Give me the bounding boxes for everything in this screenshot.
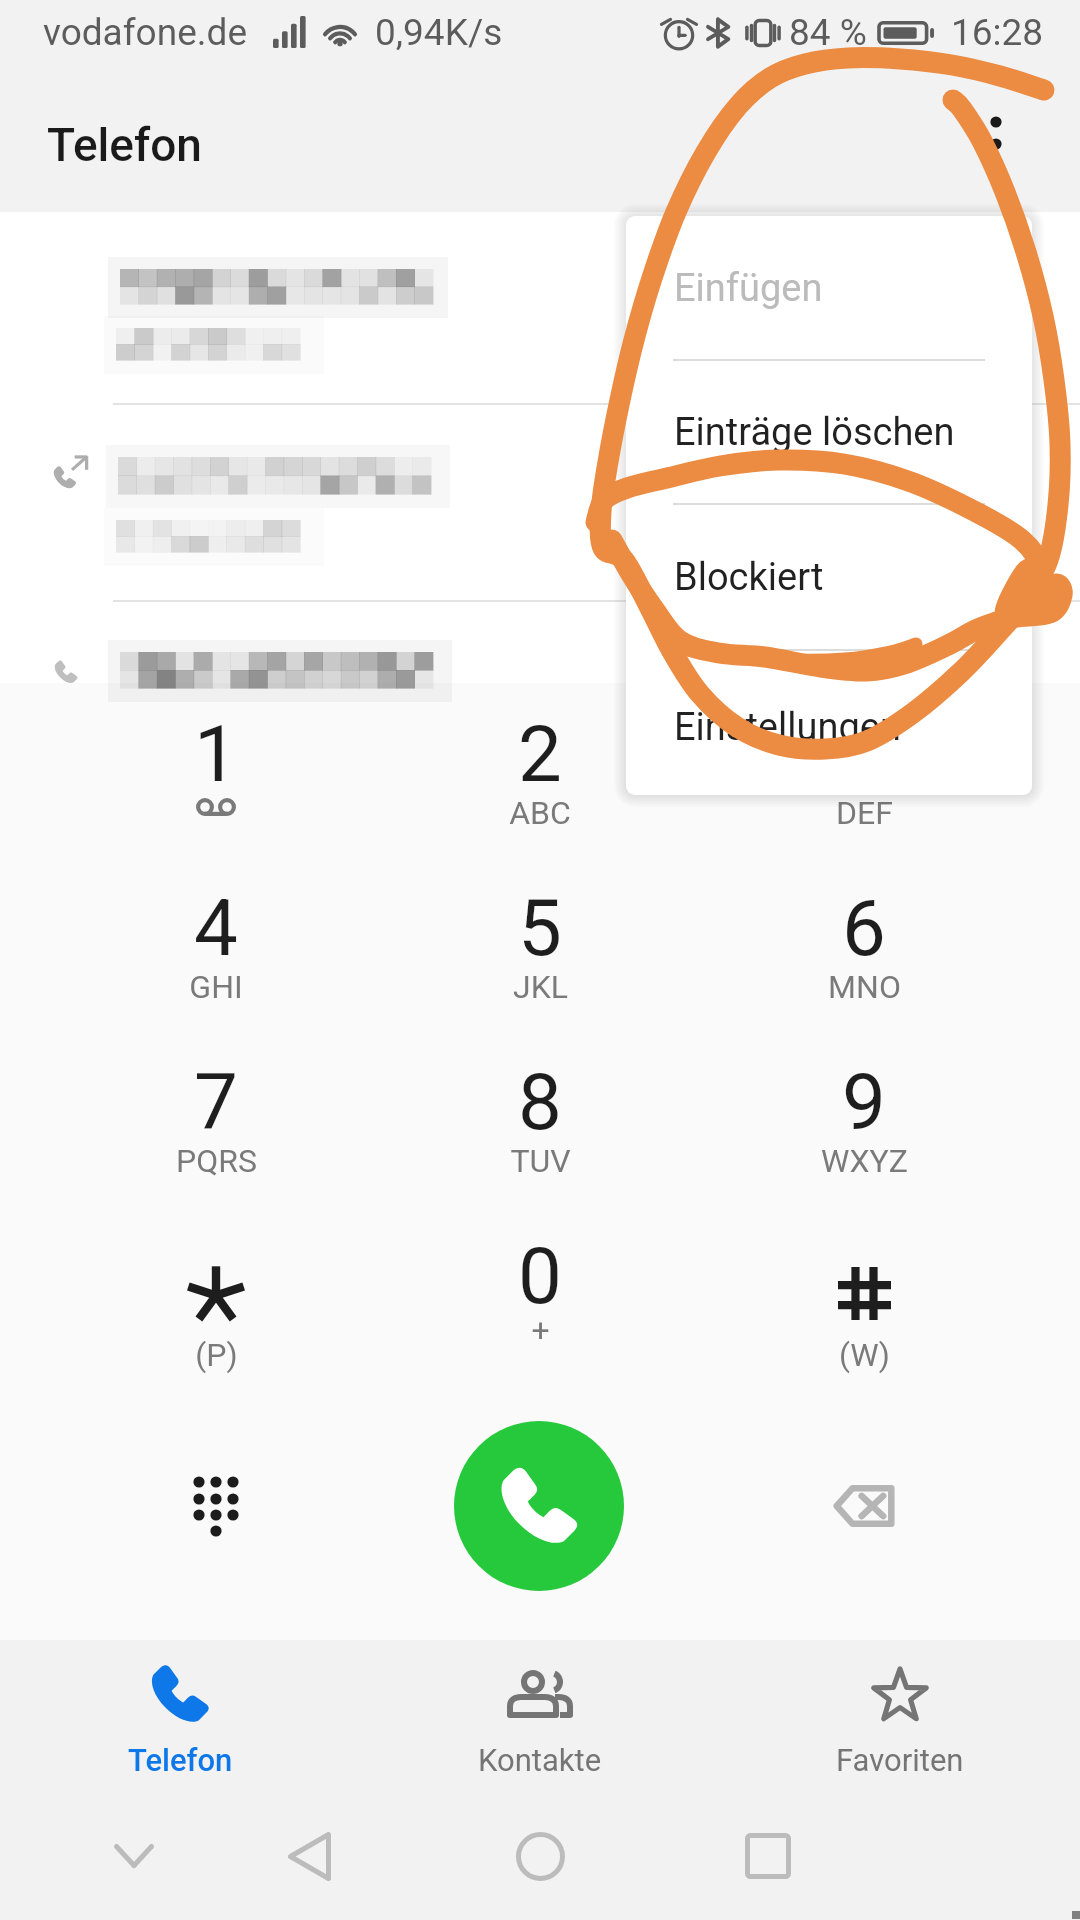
button[interactable]: 2 [378, 709, 702, 883]
button[interactable]: Home [480, 1796, 600, 1916]
staticText: 4 [194, 883, 238, 967]
staticText: (P) [195, 1336, 238, 1374]
staticText: 7 [194, 1057, 238, 1141]
staticText: 84 % [789, 11, 867, 54]
button[interactable]: Backspace [789, 1431, 939, 1581]
staticText: 9 [842, 1057, 886, 1141]
staticText: Favoriten [836, 1742, 964, 1778]
staticText: 8 [518, 1057, 562, 1141]
staticText: 1 [194, 709, 238, 793]
staticText: GHI [189, 968, 243, 1006]
staticText: Telefon [128, 1742, 233, 1778]
button[interactable]: Show keypad [140, 1431, 290, 1581]
staticText: 3 [842, 709, 886, 793]
staticText: Einträge löschen [674, 410, 955, 455]
button[interactable]: 7 [54, 1057, 378, 1231]
button[interactable]: 8 [378, 1057, 702, 1231]
staticText: PQRS [176, 1142, 257, 1180]
button[interactable]: Blockiert [626, 504, 1032, 650]
button[interactable]: Recents [708, 1796, 828, 1916]
staticText: WXYZ [821, 1142, 908, 1180]
staticText: Einfügen [674, 266, 823, 311]
staticText: Blockiert [674, 555, 824, 600]
button[interactable]: 4 [54, 883, 378, 1057]
button[interactable]: Hide keyboard [74, 1796, 194, 1916]
button[interactable]: 0 [378, 1231, 702, 1405]
button[interactable]: More options [948, 74, 1044, 170]
button[interactable]: Favoriten [720, 1640, 1080, 1800]
staticText: 0 [518, 1231, 562, 1315]
staticText: 6 [842, 883, 886, 967]
staticText: Einstellungen [674, 705, 901, 750]
staticText: Telefon [47, 118, 202, 172]
button[interactable]: 6 [702, 883, 1026, 1057]
button[interactable]: 9 [702, 1057, 1026, 1231]
staticText: JKL [513, 968, 568, 1006]
button[interactable]: 1 [54, 709, 378, 883]
button[interactable]: Einstellungen [626, 655, 1032, 795]
staticText: 2 [518, 709, 562, 793]
button[interactable]: Telefon [0, 1640, 360, 1800]
button[interactable]: Einträge löschen [626, 360, 1032, 504]
button[interactable]: Kontakte [360, 1640, 720, 1800]
staticText: MNO [828, 968, 901, 1006]
button[interactable]: 3 [702, 709, 1026, 883]
button[interactable]: (W) [702, 1231, 1026, 1405]
staticText: + [531, 1311, 550, 1349]
staticText: (W) [839, 1336, 890, 1374]
staticText: ABC [509, 794, 571, 832]
button[interactable]: (P) [54, 1231, 378, 1405]
button[interactable]: 5 [378, 883, 702, 1057]
staticText: 16:28 [951, 11, 1044, 54]
staticText: 5 [518, 883, 562, 967]
staticText: DEF [836, 794, 893, 832]
staticText: vodafone.de [43, 11, 248, 54]
button[interactable]: Back [249, 1796, 369, 1916]
staticText: Kontakte [478, 1742, 602, 1778]
button[interactable]: Call [454, 1421, 624, 1591]
staticText: 0,94K/s [375, 11, 503, 54]
button[interactable]: Einfügen [626, 216, 1032, 360]
staticText: TUV [510, 1142, 571, 1180]
